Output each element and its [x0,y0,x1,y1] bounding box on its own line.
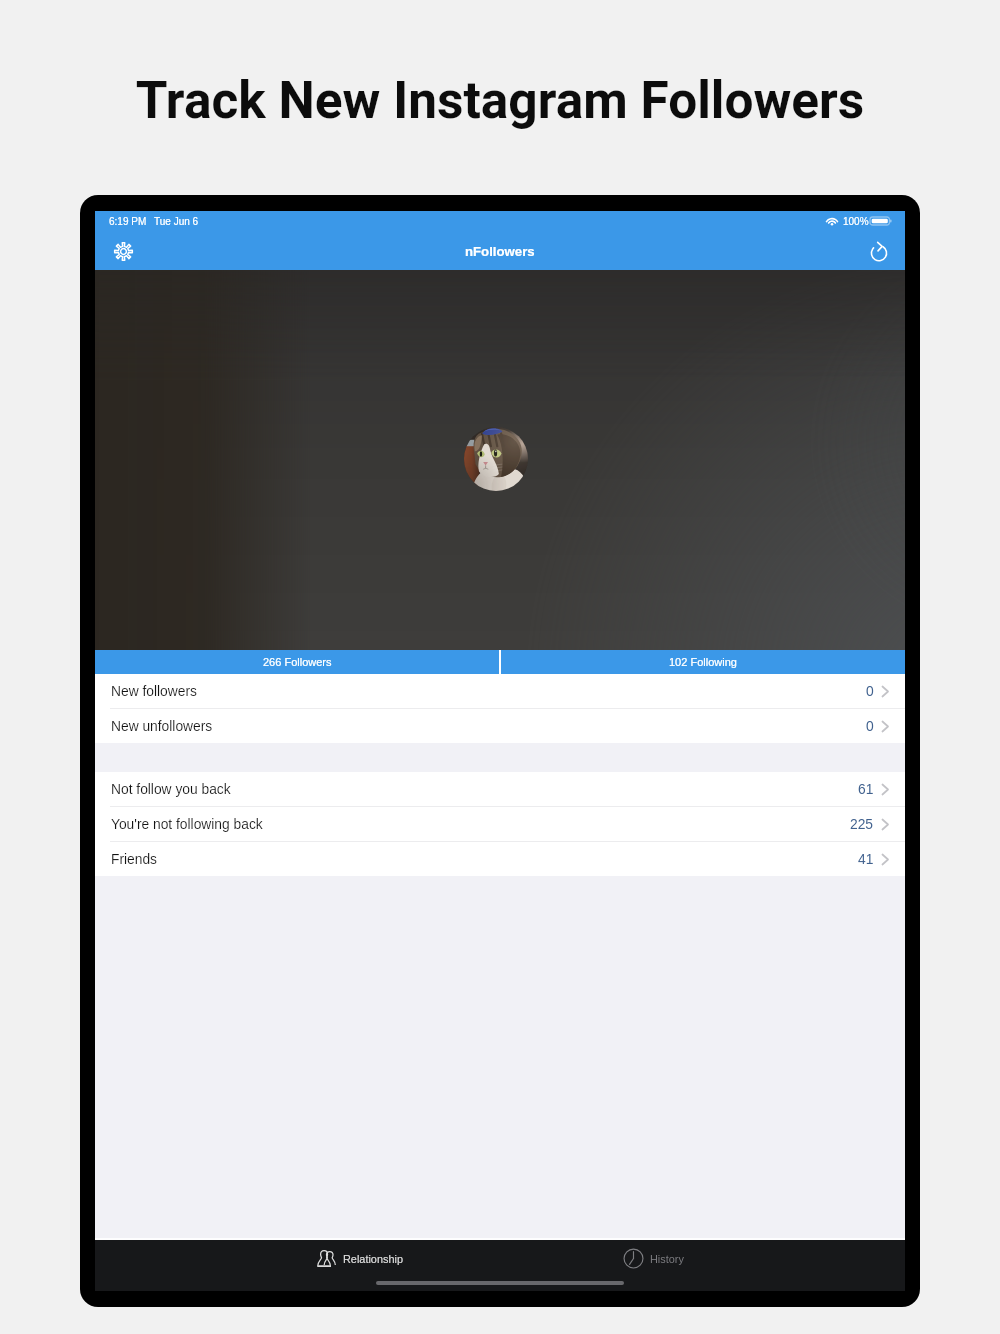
staticText: New followers [111,684,197,699]
staticText: 102 Following [669,656,737,668]
staticText: Relationship [343,1253,403,1265]
staticText: nFollowers [465,244,535,259]
staticText: 0 [866,684,874,699]
staticText: 266 Followers [263,656,332,668]
staticText: Not follow you back [111,782,231,797]
button[interactable]: 266 Followers [95,650,499,674]
button[interactable]: Not follow you back [95,772,905,807]
staticText: 61 [858,782,874,797]
staticText: New unfollowers [111,719,213,734]
button[interactable]: New followers [95,674,905,709]
button[interactable]: 102 Following [501,650,905,674]
staticText: Friends [111,852,158,867]
button[interactable]: New unfollowers [95,709,905,743]
staticText: Track New Instagram Followers [0,70,1000,130]
button[interactable]: Refresh [859,232,899,270]
staticText: You're not following back [111,817,263,832]
button[interactable]: History [506,1240,800,1276]
staticText: History [650,1253,684,1265]
button[interactable]: Settings [103,232,143,270]
staticText: 6:19 PM [109,216,147,227]
staticText: 100% [843,216,869,227]
staticText: 0 [866,719,874,734]
button[interactable]: Friends [95,842,905,876]
button[interactable]: Relationship [212,1240,506,1276]
staticText: 41 [858,852,874,867]
staticText: 225 [850,817,874,832]
button[interactable]: You're not following back [95,807,905,842]
staticText: Tue Jun 6 [154,216,199,227]
